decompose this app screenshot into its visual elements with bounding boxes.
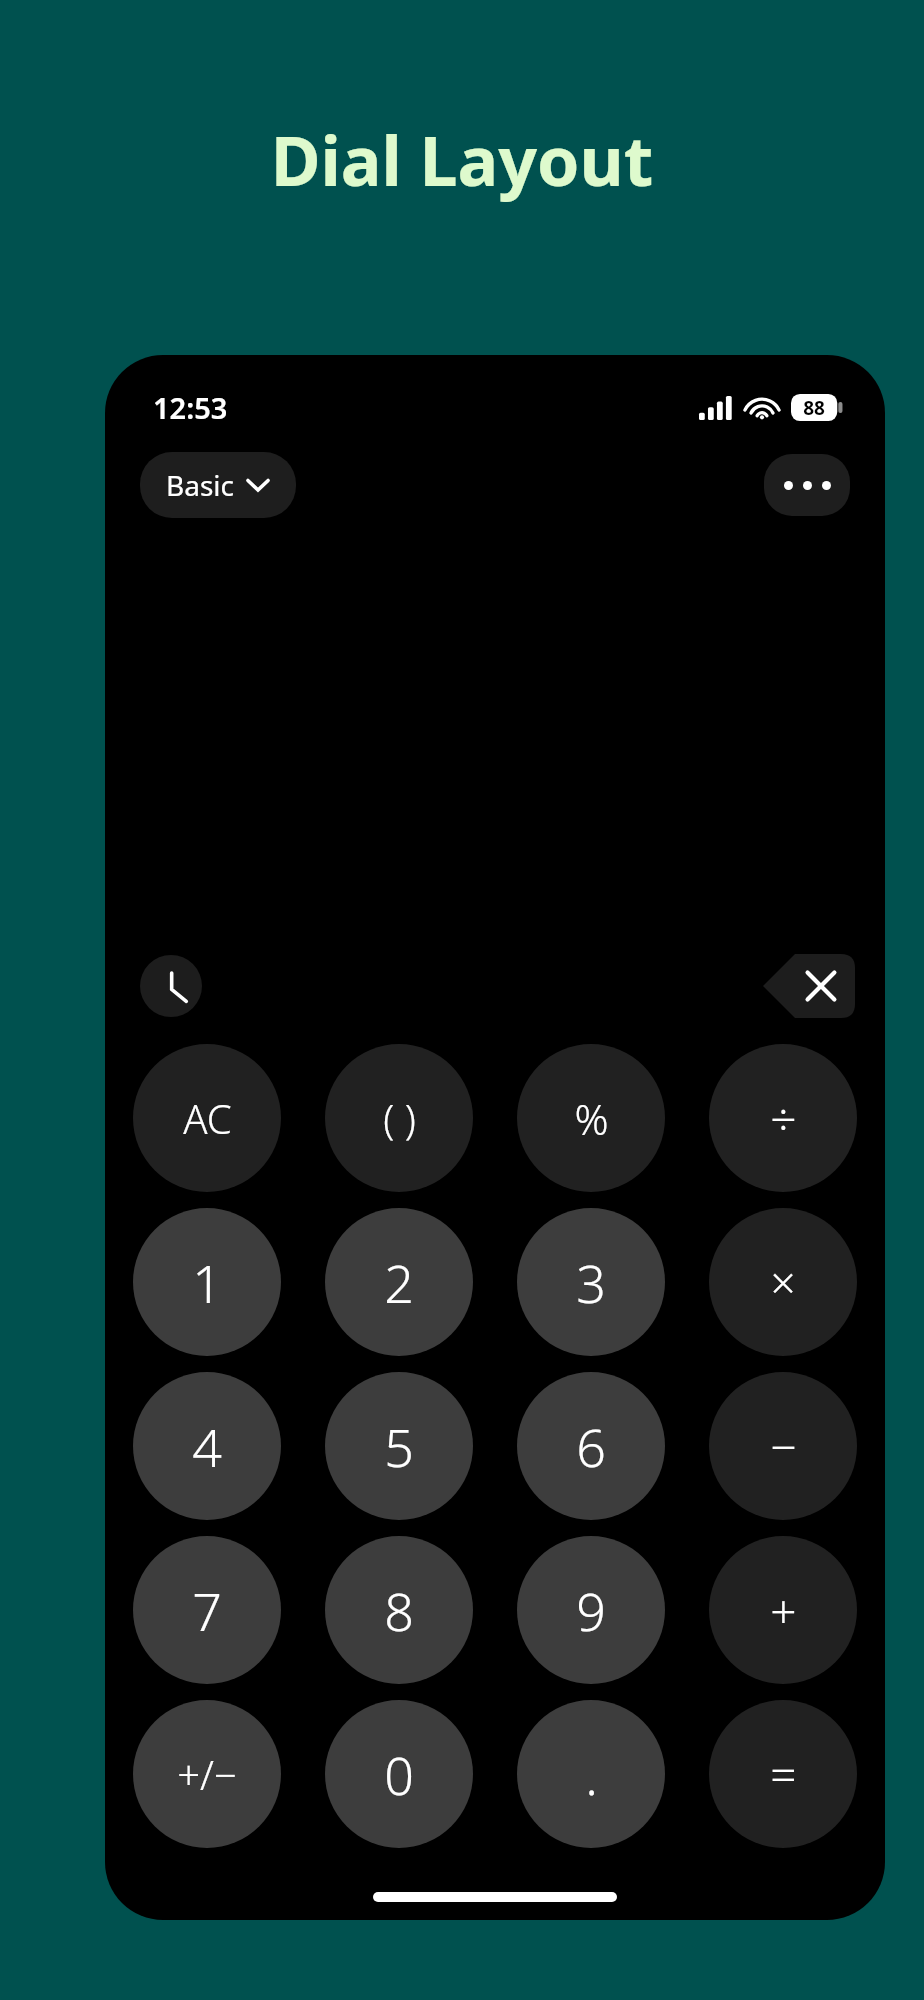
button[interactable]: 1 xyxy=(133,1208,281,1356)
staticText: × xyxy=(770,1252,796,1312)
button[interactable]: 6 xyxy=(517,1372,665,1520)
button[interactable]: AC xyxy=(133,1044,281,1192)
button[interactable]: + xyxy=(709,1536,857,1684)
staticText: 4 xyxy=(192,1411,222,1482)
button[interactable]: − xyxy=(709,1372,857,1520)
staticText: 0 xyxy=(384,1739,414,1810)
staticText: 9 xyxy=(576,1575,606,1646)
button[interactable]: ÷ xyxy=(709,1044,857,1192)
button[interactable]: 0 xyxy=(325,1700,473,1848)
staticText: = xyxy=(770,1743,797,1806)
button[interactable]: × xyxy=(709,1208,857,1356)
staticText: Basic xyxy=(166,466,234,504)
staticText: 8 xyxy=(384,1575,414,1646)
staticText: AC xyxy=(183,1091,232,1145)
staticText: 2 xyxy=(384,1247,414,1318)
button[interactable]: 4 xyxy=(133,1372,281,1520)
staticText: ( ) xyxy=(383,1091,416,1145)
button[interactable]: Basic xyxy=(140,452,296,518)
staticText: . xyxy=(585,1739,598,1810)
staticText: 7 xyxy=(192,1575,222,1646)
staticText: 3 xyxy=(576,1247,606,1318)
staticText: % xyxy=(574,1090,609,1147)
staticText: +/− xyxy=(177,1747,237,1801)
button[interactable]: 7 xyxy=(133,1536,281,1684)
staticText: 12:53 xyxy=(153,388,228,427)
button[interactable]: . xyxy=(517,1700,665,1848)
button[interactable]: +/− xyxy=(133,1700,281,1848)
button[interactable]: Backspace xyxy=(763,954,855,1018)
staticText: 6 xyxy=(576,1411,606,1482)
button[interactable]: 8 xyxy=(325,1536,473,1684)
staticText: Dial Layout xyxy=(0,113,924,206)
button[interactable]: History xyxy=(140,955,202,1017)
staticText: 88 xyxy=(791,395,837,421)
button[interactable]: 9 xyxy=(517,1536,665,1684)
staticText: 1 xyxy=(192,1247,222,1318)
button[interactable]: % xyxy=(517,1044,665,1192)
staticText: 5 xyxy=(384,1411,414,1482)
button[interactable]: ( ) xyxy=(325,1044,473,1192)
button[interactable]: 3 xyxy=(517,1208,665,1356)
button[interactable]: 2 xyxy=(325,1208,473,1356)
button[interactable]: = xyxy=(709,1700,857,1848)
button[interactable]: 5 xyxy=(325,1372,473,1520)
button[interactable]: More options xyxy=(764,454,850,516)
staticText: ÷ xyxy=(770,1087,797,1150)
staticText: + xyxy=(770,1579,797,1642)
staticText: − xyxy=(770,1415,797,1478)
